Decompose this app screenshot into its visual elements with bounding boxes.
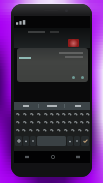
- button[interactable]: [28, 118, 35, 126]
- button[interactable]: Home: [40, 151, 65, 163]
- button[interactable]: Recents: [65, 151, 90, 163]
- button[interactable]: [35, 110, 42, 118]
- button[interactable]: [62, 126, 69, 135]
- button[interactable]: Numbers: [74, 136, 80, 146]
- button[interactable]: [78, 118, 84, 126]
- button[interactable]: [39, 102, 64, 110]
- button[interactable]: [66, 118, 72, 126]
- button[interactable]: [27, 126, 34, 135]
- button[interactable]: [60, 118, 66, 126]
- button[interactable]: [21, 110, 28, 118]
- button[interactable]: [55, 126, 62, 135]
- button[interactable]: Back: [14, 151, 40, 163]
- button[interactable]: [65, 102, 90, 110]
- button[interactable]: [54, 110, 60, 118]
- button[interactable]: [35, 118, 42, 126]
- button[interactable]: [83, 126, 90, 135]
- button[interactable]: Symbols: [30, 136, 36, 146]
- button[interactable]: [42, 118, 48, 126]
- button[interactable]: [60, 110, 66, 118]
- button[interactable]: [69, 126, 76, 135]
- button[interactable]: Enter: [81, 136, 89, 146]
- button[interactable]: Emoji: [15, 136, 22, 146]
- button[interactable]: [54, 118, 60, 126]
- button[interactable]: [78, 110, 84, 118]
- button[interactable]: [84, 110, 90, 118]
- button[interactable]: [34, 126, 41, 135]
- button[interactable]: [28, 110, 35, 118]
- button[interactable]: [72, 110, 78, 118]
- button[interactable]: Video message: [68, 39, 79, 47]
- button[interactable]: [84, 118, 90, 126]
- button[interactable]: [20, 126, 27, 135]
- button[interactable]: [72, 118, 78, 126]
- button[interactable]: Comma: [23, 136, 29, 146]
- button[interactable]: [48, 110, 54, 118]
- button[interactable]: [21, 118, 28, 126]
- button[interactable]: [14, 110, 21, 118]
- button[interactable]: [41, 126, 48, 135]
- button[interactable]: [14, 102, 38, 110]
- button[interactable]: [14, 118, 21, 126]
- button[interactable]: Period: [67, 136, 73, 146]
- button[interactable]: [42, 110, 48, 118]
- button[interactable]: [48, 126, 55, 135]
- button[interactable]: [48, 118, 54, 126]
- button[interactable]: [76, 126, 83, 135]
- button[interactable]: [14, 126, 20, 135]
- button[interactable]: [66, 110, 72, 118]
